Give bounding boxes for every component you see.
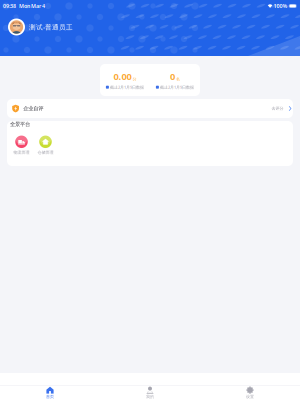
staticText: 0.00 (113, 70, 131, 82)
button[interactable]: 仓储管理 (34, 136, 57, 155)
staticText: 物流管理 (13, 150, 29, 155)
staticText: 截止2月1月9日数据 (110, 84, 144, 90)
staticText: Mon Mar 4 (16, 2, 45, 10)
staticText: 测试-普通员工 (29, 23, 73, 31)
staticText: 全景平台 (10, 121, 30, 128)
staticText: 设置 (246, 394, 254, 399)
staticText: 我的 (146, 394, 154, 399)
button[interactable]: 物流管理 (10, 136, 33, 155)
button[interactable]: 企业自评 (7, 99, 293, 118)
staticText: 首页 (46, 394, 54, 399)
button[interactable]: 我的 (100, 385, 200, 400)
staticText: 名 (176, 77, 180, 82)
button[interactable]: 首页 (0, 385, 100, 400)
staticText: 100% (273, 2, 289, 10)
button[interactable]: 设置 (200, 385, 300, 400)
staticText: 截止2月1月9日数据 (160, 84, 194, 90)
staticText: 企业自评 (23, 105, 43, 112)
staticText: 0 (170, 70, 175, 82)
staticText: 去评分 (271, 106, 283, 111)
staticText: 09:38 (3, 2, 16, 10)
staticText: 仓储管理 (37, 150, 53, 155)
staticText: 分 (132, 77, 136, 82)
